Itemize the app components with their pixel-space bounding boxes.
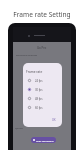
staticText: OK — [52, 118, 56, 122]
button[interactable]: 60 fps — [23, 103, 62, 112]
staticText: Start Recording — [36, 139, 54, 142]
staticText: Go Pro — [37, 46, 47, 50]
staticText: 24 fps — [35, 79, 43, 83]
button[interactable]: 30 fps — [23, 85, 62, 94]
staticText: Recording Settings — [16, 53, 38, 56]
staticText: Frame rate — [26, 70, 43, 74]
button[interactable]: Start Recording — [31, 137, 56, 143]
button[interactable]: OK — [52, 118, 62, 127]
button[interactable]: 24 fps — [23, 76, 62, 85]
staticText: Quality — [15, 126, 24, 129]
staticText: 60 fps — [35, 106, 43, 110]
button[interactable]: 48 fps — [23, 94, 62, 103]
staticText: Frame rate Setting — [0, 10, 84, 19]
staticText: 48 fps — [35, 97, 43, 101]
staticText: 30 fps — [35, 88, 43, 92]
